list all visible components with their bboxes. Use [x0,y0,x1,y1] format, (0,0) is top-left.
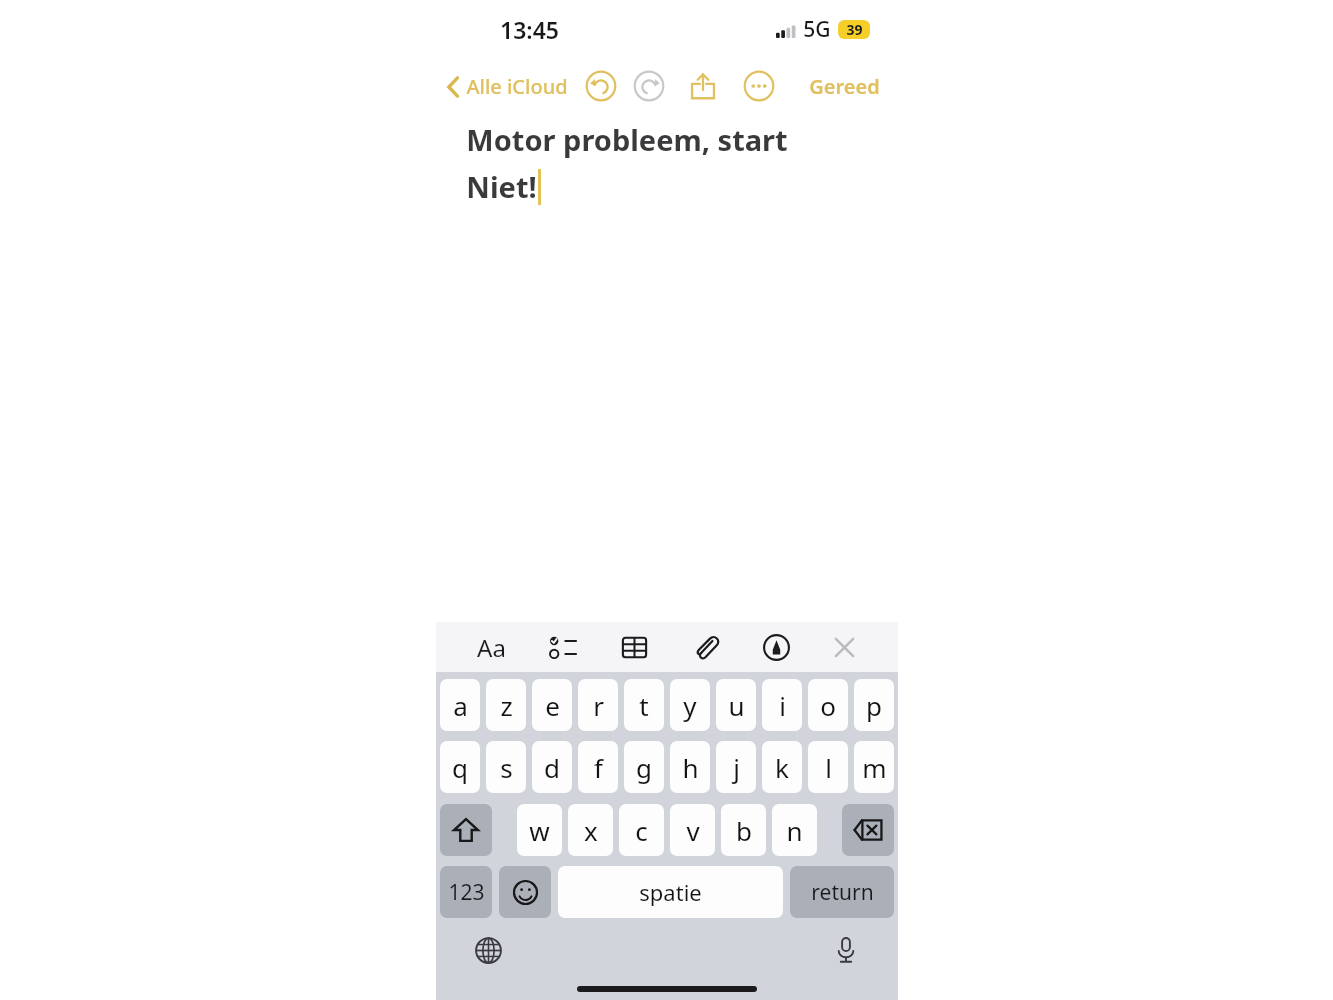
button[interactable]: Markup [756,627,796,667]
button[interactable]: 123 [440,866,492,918]
button[interactable]: Aa [470,626,512,668]
button[interactable]: Emoji [499,866,551,918]
staticText: u [728,688,745,723]
button[interactable]: t [624,679,664,731]
staticText: h [682,750,699,785]
button[interactable]: h [670,741,710,793]
button[interactable]: k [762,741,802,793]
button[interactable]: Gereed [799,69,890,104]
staticText: p [866,688,882,723]
staticText: Alle iCloud [466,73,568,100]
staticText: x [584,813,598,848]
staticText: i [779,688,786,723]
staticText: 39 [846,20,863,39]
staticText: z [500,688,513,723]
button[interactable]: Attach [686,627,726,667]
staticText: a [453,688,468,723]
button[interactable]: c [619,804,664,856]
button[interactable]: v [670,804,715,856]
button[interactable]: Table [614,627,654,667]
button[interactable]: j [716,741,756,793]
button[interactable]: r [578,679,618,731]
button[interactable]: Share [686,69,720,103]
button[interactable]: z [486,679,526,731]
staticText: v [686,813,700,848]
staticText: return [811,878,874,907]
button[interactable]: Redo [632,69,666,103]
button[interactable]: p [854,679,894,731]
button[interactable]: Shift [440,804,492,856]
button[interactable]: spatie [558,866,783,918]
button[interactable]: Alle iCloud [436,69,574,104]
staticText: n [786,813,803,848]
staticText: 123 [448,878,485,907]
staticText: b [736,813,752,848]
button[interactable]: q [440,741,480,793]
staticText: t [639,688,649,723]
staticText: d [544,750,560,785]
button[interactable]: i [762,679,802,731]
staticText: Gereed [809,73,880,100]
button[interactable]: s [486,741,526,793]
staticText: j [733,750,740,785]
button[interactable]: u [716,679,756,731]
staticText: Niet! [466,167,537,206]
button[interactable]: d [532,741,572,793]
staticText: l [825,750,832,785]
staticText: o [820,688,836,723]
button[interactable]: Close keyboard [824,627,864,667]
button[interactable]: Undo [584,69,618,103]
staticText: y [683,688,697,723]
staticText: Aa [477,631,506,664]
button[interactable]: Dictation [826,930,866,970]
staticText: g [636,750,652,785]
button[interactable]: f [578,741,618,793]
button[interactable]: Checklist [542,627,582,667]
staticText: w [529,813,550,848]
staticText: r [593,688,604,723]
staticText: 13:45 [500,14,559,45]
button[interactable]: m [854,741,894,793]
button[interactable]: y [670,679,710,731]
staticText: s [500,750,513,785]
staticText: f [594,750,603,785]
staticText: Motor probleem, start [466,120,788,159]
staticText: spatie [639,877,702,907]
button[interactable]: l [808,741,848,793]
staticText: 5G [803,15,831,44]
button[interactable]: return [790,866,894,918]
button[interactable]: b [721,804,766,856]
button[interactable]: g [624,741,664,793]
button[interactable]: n [772,804,817,856]
button[interactable]: Change keyboard language [468,930,508,970]
button[interactable]: w [517,804,562,856]
staticText: m [862,750,887,785]
staticText: k [775,750,789,785]
button[interactable]: o [808,679,848,731]
staticText: q [452,750,468,785]
staticText: c [635,813,648,848]
button[interactable]: e [532,679,572,731]
button[interactable]: Backspace [842,804,894,856]
button[interactable]: More options [742,69,776,103]
button[interactable]: x [568,804,613,856]
staticText: e [545,688,560,723]
button[interactable]: a [440,679,480,731]
